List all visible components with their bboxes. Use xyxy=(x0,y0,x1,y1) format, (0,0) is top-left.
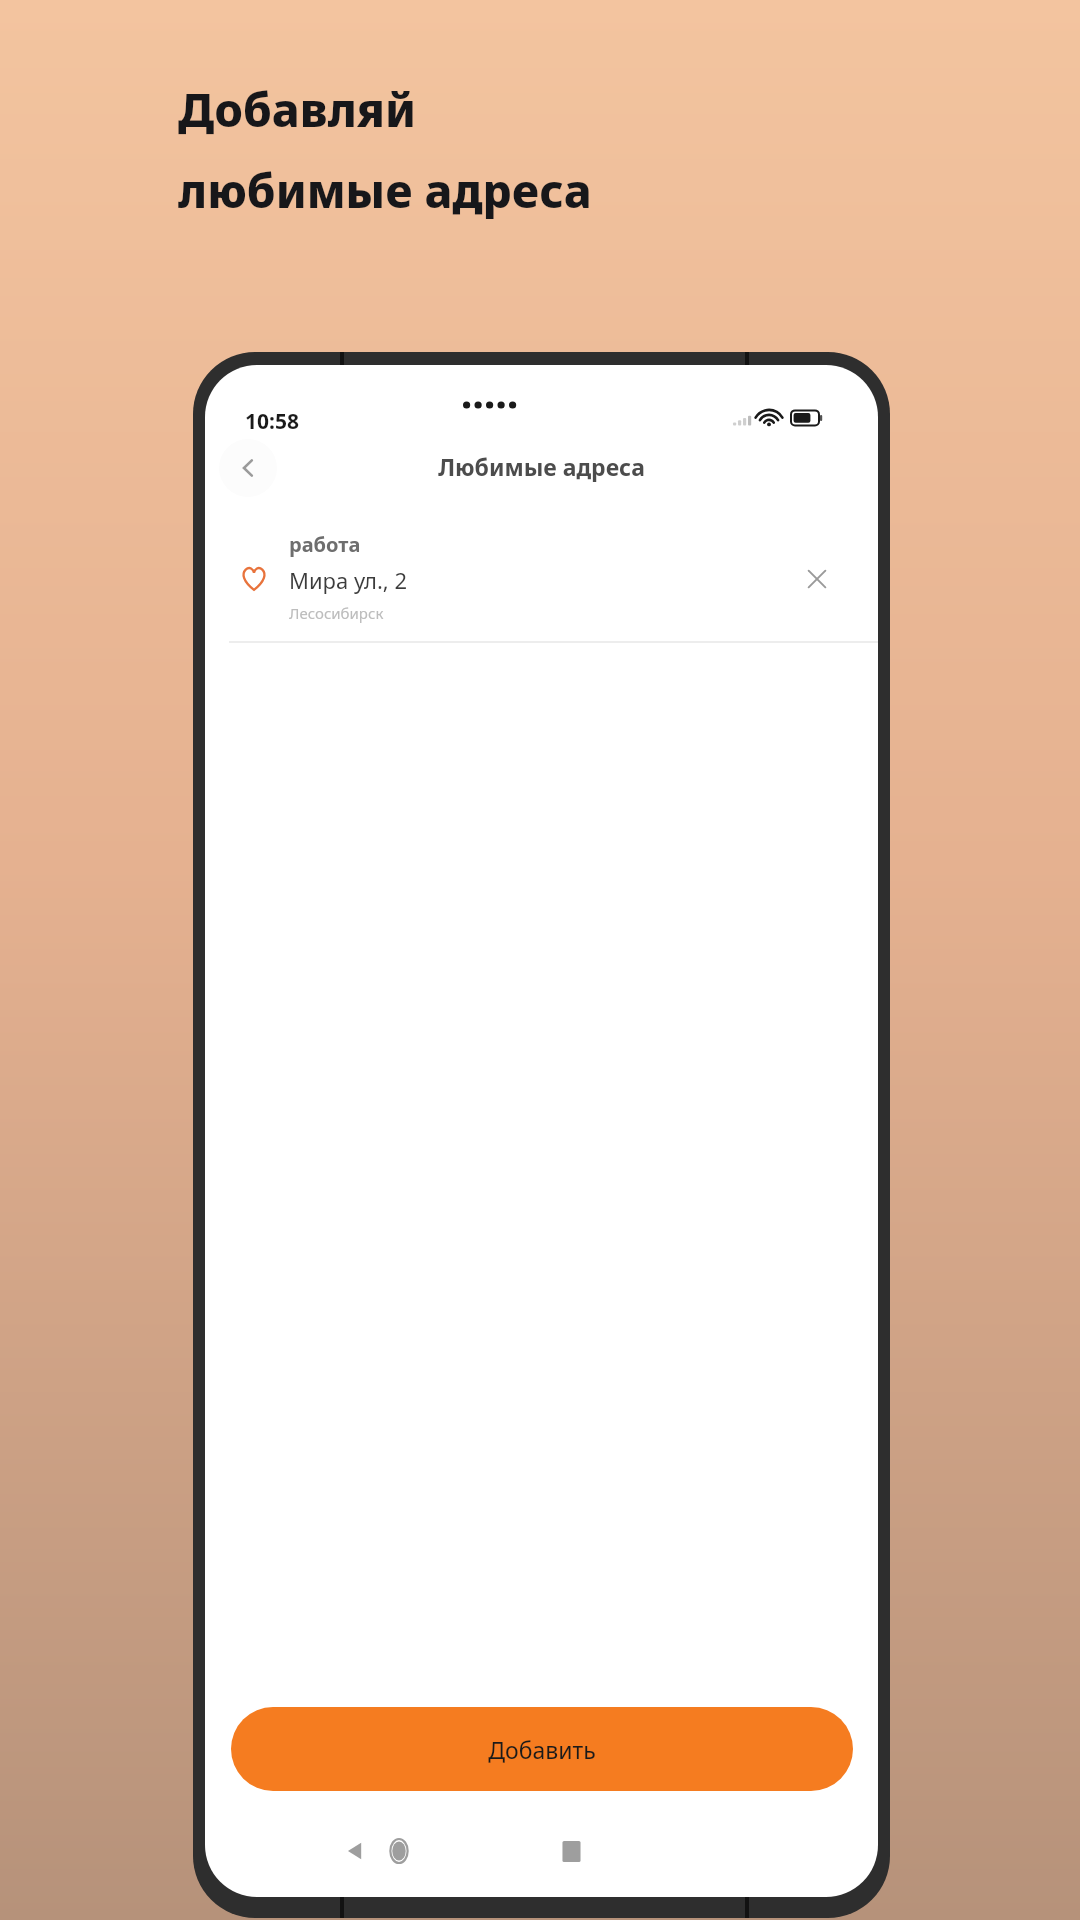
staticText: любимые адреса xyxy=(178,159,592,222)
staticText: работа xyxy=(289,531,361,558)
button[interactable]: Back xyxy=(219,439,277,497)
staticText: Любимые адреса xyxy=(438,451,645,482)
staticText: Мира ул., 2 xyxy=(289,565,408,595)
staticText: 10:58 xyxy=(245,407,299,436)
staticText: Добавить xyxy=(488,1734,596,1765)
button[interactable]: Recent apps xyxy=(549,1829,593,1873)
staticText: Добавляй xyxy=(178,78,416,141)
button[interactable]: Добавить xyxy=(231,1707,853,1791)
button[interactable]: работа xyxy=(205,513,878,643)
button[interactable]: Home xyxy=(377,1829,421,1873)
button[interactable]: Back xyxy=(333,1829,377,1873)
staticText: Лесосибирск xyxy=(289,603,384,623)
button[interactable]: Remove address xyxy=(795,557,839,601)
